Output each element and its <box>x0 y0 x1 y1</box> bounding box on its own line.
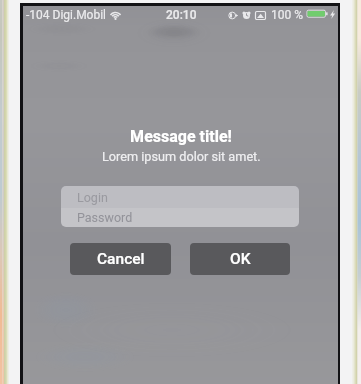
other: Charging <box>330 10 335 19</box>
other: Battery full <box>307 10 328 19</box>
staticText: OK <box>230 250 251 268</box>
button[interactable]: OK <box>190 243 290 275</box>
staticText: 20:10 <box>166 8 197 22</box>
other: Alarm set <box>242 11 251 20</box>
staticText: Lorem ipsum dolor sit amet. <box>102 149 261 164</box>
staticText: -104 Digi.Mobil <box>26 8 107 22</box>
other: Screenshot <box>255 11 266 20</box>
button[interactable]: Cancel <box>70 243 171 275</box>
button[interactable]: Login <box>61 186 299 208</box>
staticText: Password <box>77 210 133 225</box>
other: Data saver <box>228 11 238 20</box>
button[interactable]: Password <box>61 208 299 227</box>
staticText: Login <box>77 190 108 205</box>
staticText: Message title! <box>130 127 232 146</box>
staticText: Cancel <box>97 250 145 268</box>
staticText: 100 % <box>271 8 303 22</box>
